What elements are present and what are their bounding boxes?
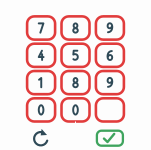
button[interactable] (61, 16, 89, 40)
button[interactable]: Confirm (96, 128, 124, 146)
button[interactable] (96, 71, 124, 94)
button[interactable] (61, 71, 89, 94)
button[interactable] (61, 98, 89, 121)
button[interactable] (27, 71, 55, 94)
button[interactable] (27, 16, 55, 40)
button[interactable] (61, 44, 89, 67)
button[interactable] (96, 44, 124, 67)
button[interactable]: Reset (27, 128, 55, 146)
button[interactable] (27, 44, 55, 67)
button[interactable] (27, 98, 55, 121)
button[interactable] (96, 16, 124, 40)
